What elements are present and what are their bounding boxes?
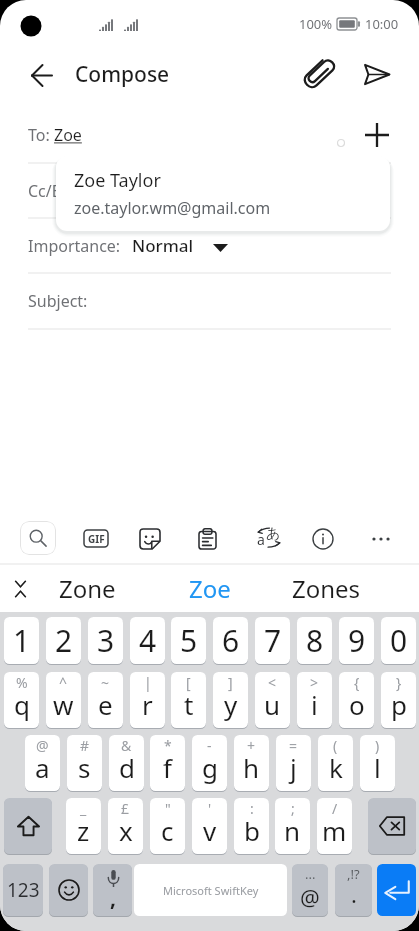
- staticText: To:: [28, 124, 54, 146]
- staticText: c: [161, 813, 174, 848]
- button[interactable]: =: [276, 735, 311, 791]
- button[interactable]: 1: [4, 617, 39, 664]
- button[interactable]: ^: [46, 672, 81, 728]
- button[interactable]: <: [255, 672, 290, 728]
- staticText: /: [332, 799, 338, 818]
- staticText: {: [354, 673, 360, 692]
- staticText: ,: [110, 884, 116, 913]
- staticText: #: [80, 736, 90, 755]
- button[interactable]: [: [171, 672, 206, 728]
- button[interactable]: At sign: [292, 864, 328, 916]
- staticText: f: [163, 750, 172, 785]
- button[interactable]: Zones: [272, 565, 380, 611]
- staticText: 123: [7, 877, 40, 903]
- button[interactable]: Attach file: [291, 48, 345, 102]
- staticText: ": [165, 799, 171, 818]
- button[interactable]: +: [234, 735, 269, 791]
- button[interactable]: Info: [309, 525, 337, 553]
- staticText: v: [203, 813, 217, 848]
- button[interactable]: Numbers: [3, 864, 43, 916]
- button[interactable]: 6: [213, 617, 248, 664]
- button[interactable]: &: [109, 735, 144, 791]
- button[interactable]: ;: [275, 798, 310, 854]
- button[interactable]: Voice input: [93, 864, 132, 916]
- staticText: Zone: [59, 572, 116, 605]
- staticText: Cc/Bcc:: [28, 180, 82, 202]
- button[interactable]: Shift: [4, 798, 52, 854]
- button[interactable]: ): [360, 735, 395, 791]
- button[interactable]: Zone: [33, 565, 141, 611]
- staticText: Zoe Taylor: [74, 168, 161, 193]
- staticText: 3: [97, 620, 115, 661]
- staticText: Zoe: [54, 124, 82, 146]
- button[interactable]: >: [297, 672, 332, 728]
- button[interactable]: |: [130, 672, 165, 728]
- button[interactable]: 3: [88, 617, 123, 664]
- button[interactable]: GIF: [82, 526, 110, 550]
- button[interactable]: #: [67, 735, 102, 791]
- staticText: +: [247, 736, 256, 755]
- button[interactable]: -: [192, 735, 227, 791]
- button[interactable]: £: [108, 798, 143, 854]
- staticText: £: [121, 799, 130, 818]
- button[interactable]: _: [66, 798, 101, 854]
- button[interactable]: Microsoft SwiftKey: [134, 864, 287, 916]
- button[interactable]: }: [381, 672, 416, 728]
- button[interactable]: Zoe Taylor: [56, 156, 390, 231]
- staticText: <: [268, 673, 277, 692]
- staticText: Importance:: [28, 235, 121, 257]
- button[interactable]: (: [318, 735, 353, 791]
- button[interactable]: *: [150, 735, 185, 791]
- button[interactable]: :: [234, 798, 269, 854]
- button[interactable]: 0: [381, 617, 416, 664]
- button[interactable]: Translate: [256, 525, 282, 549]
- button[interactable]: Search: [20, 521, 56, 555]
- staticText: a: [35, 750, 50, 785]
- staticText: >: [310, 673, 319, 692]
- button[interactable]: 5: [171, 617, 206, 664]
- button[interactable]: Add recipient: [355, 113, 399, 157]
- staticText: ~: [101, 673, 110, 692]
- button[interactable]: More options: [367, 525, 395, 553]
- button[interactable]: 7: [255, 617, 290, 664]
- staticText: ]: [228, 673, 233, 692]
- staticText: p: [391, 687, 407, 722]
- staticText: Compose: [75, 60, 170, 89]
- button[interactable]: Send: [350, 47, 404, 101]
- staticText: zoe.taylor.wm@gmail.com: [74, 197, 271, 219]
- button[interactable]: Backspace: [368, 798, 416, 854]
- staticText: i: [311, 687, 318, 722]
- button[interactable]: ": [150, 798, 185, 854]
- button[interactable]: Emoji: [49, 864, 88, 916]
- button[interactable]: Expand suggestions: [3, 570, 37, 608]
- button[interactable]: ~: [88, 672, 123, 728]
- staticText: Zoe: [189, 572, 231, 605]
- button[interactable]: 8: [297, 617, 332, 664]
- staticText: }: [396, 673, 402, 692]
- button[interactable]: {: [339, 672, 374, 728]
- staticText: 0: [390, 620, 408, 661]
- button[interactable]: ]: [213, 672, 248, 728]
- button[interactable]: Enter: [377, 864, 416, 916]
- button[interactable]: Punctuation: [335, 864, 372, 916]
- staticText: -: [207, 736, 212, 755]
- staticText: Subject:: [28, 290, 88, 312]
- button[interactable]: 9: [339, 617, 374, 664]
- staticText: 1: [13, 620, 31, 661]
- button[interactable]: Stickers: [136, 525, 164, 553]
- staticText: q: [14, 687, 30, 722]
- button[interactable]: Clipboard: [193, 525, 221, 553]
- button[interactable]: @: [25, 735, 60, 791]
- staticText: 2: [55, 620, 73, 661]
- button[interactable]: 2: [46, 617, 81, 664]
- staticText: 7: [264, 620, 282, 661]
- button[interactable]: Back: [17, 51, 65, 99]
- staticText: :: [250, 799, 254, 818]
- button[interactable]: 4: [130, 617, 165, 664]
- button[interactable]: %: [4, 672, 39, 728]
- button[interactable]: /: [317, 798, 352, 854]
- staticText: b: [244, 813, 260, 848]
- staticText: e: [98, 687, 113, 722]
- button[interactable]: Zoe: [156, 565, 264, 611]
- button[interactable]: ': [192, 798, 227, 854]
